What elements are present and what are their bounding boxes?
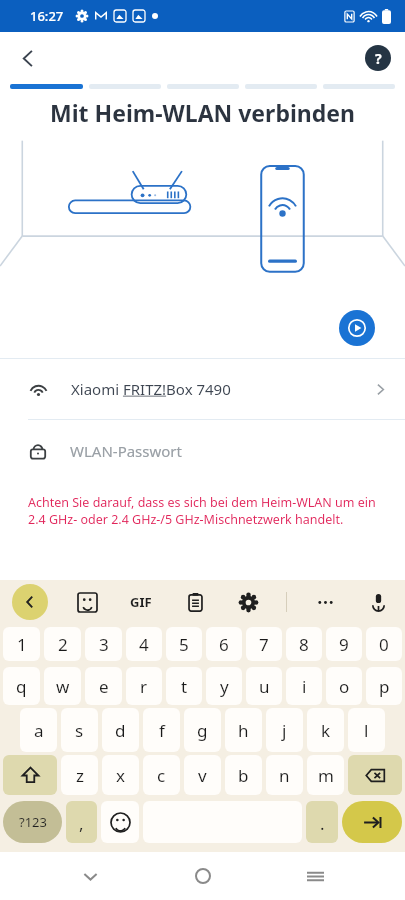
- button[interactable]: Home: [181, 854, 225, 898]
- staticText: q: [16, 675, 27, 698]
- button[interactable]: d: [102, 708, 139, 752]
- button[interactable]: 4: [126, 627, 162, 661]
- staticText: 9: [339, 633, 349, 656]
- button[interactable]: Back: [68, 854, 112, 898]
- button[interactable]: p: [366, 667, 402, 705]
- button[interactable]: ?123: [3, 801, 62, 843]
- staticText: GIF: [130, 593, 152, 611]
- button[interactable]: WLAN-Passwort: [0, 420, 405, 482]
- button[interactable]: l: [348, 708, 385, 752]
- button[interactable]: n: [266, 755, 303, 795]
- button[interactable]: v: [184, 755, 221, 795]
- button[interactable]: Shift: [3, 755, 57, 795]
- button[interactable]: Close toolbar: [12, 584, 48, 620]
- staticText: x: [116, 764, 125, 787]
- button[interactable]: w: [44, 667, 81, 705]
- button[interactable]: y: [206, 667, 242, 705]
- staticText: 2: [58, 633, 68, 656]
- staticText: 8: [299, 633, 309, 656]
- button[interactable]: u: [246, 667, 282, 705]
- button[interactable]: Play video: [339, 310, 375, 346]
- button[interactable]: a: [20, 708, 57, 752]
- button[interactable]: 8: [286, 627, 322, 661]
- staticText: 4: [139, 633, 149, 656]
- staticText: v: [198, 764, 207, 787]
- staticText: o: [339, 675, 350, 698]
- button[interactable]: 2: [44, 627, 81, 661]
- button[interactable]: Back: [6, 36, 50, 80]
- staticText: Mit Heim-WLAN verbinden: [16, 97, 389, 128]
- staticText: u: [259, 675, 270, 698]
- button[interactable]: GIF: [126, 589, 156, 615]
- staticText: ?: [375, 49, 382, 68]
- staticText: 6: [219, 633, 229, 656]
- staticText: a: [34, 719, 44, 742]
- button[interactable]: z: [61, 755, 98, 795]
- button[interactable]: Settings: [233, 587, 263, 617]
- button[interactable]: .: [306, 801, 338, 843]
- button[interactable]: o: [326, 667, 362, 705]
- staticText: p: [379, 675, 390, 698]
- staticText: b: [238, 764, 249, 787]
- button[interactable]: 9: [326, 627, 362, 661]
- button[interactable]: 0: [366, 627, 402, 661]
- staticText: s: [75, 719, 84, 742]
- staticText: f: [159, 719, 165, 742]
- staticText: 16:27: [30, 7, 64, 25]
- button[interactable]: 7: [246, 627, 282, 661]
- button[interactable]: Stickers: [72, 587, 102, 617]
- button[interactable]: 3: [85, 627, 122, 661]
- staticText: ?123: [19, 813, 47, 831]
- button[interactable]: r: [126, 667, 162, 705]
- staticText: 1: [17, 633, 27, 656]
- staticText: c: [157, 764, 166, 787]
- staticText: 0: [379, 633, 389, 656]
- button[interactable]: b: [225, 755, 262, 795]
- staticText: .: [320, 812, 325, 835]
- button[interactable]: 5: [166, 627, 202, 661]
- staticText: k: [321, 719, 331, 742]
- button[interactable]: s: [61, 708, 98, 752]
- staticText: e: [99, 675, 109, 698]
- button[interactable]: g: [184, 708, 221, 752]
- button[interactable]: c: [143, 755, 180, 795]
- staticText: y: [220, 675, 229, 698]
- button[interactable]: Clipboard: [180, 587, 210, 617]
- staticText: z: [76, 764, 84, 787]
- staticText: 7: [259, 633, 269, 656]
- button[interactable]: x: [102, 755, 139, 795]
- staticText: d: [115, 719, 126, 742]
- staticText: g: [197, 719, 208, 742]
- button[interactable]: q: [3, 667, 40, 705]
- button[interactable]: Help: [365, 45, 391, 71]
- button[interactable]: ,: [66, 801, 97, 843]
- button[interactable]: Xiaomi FRITZ!Box 7490: [0, 359, 405, 419]
- button[interactable]: j: [266, 708, 303, 752]
- button[interactable]: k: [307, 708, 344, 752]
- button[interactable]: 1: [3, 627, 40, 661]
- button[interactable]: 6: [206, 627, 242, 661]
- button[interactable]: e: [85, 667, 122, 705]
- button[interactable]: More options: [310, 587, 340, 617]
- staticText: m: [318, 764, 334, 787]
- button[interactable]: i: [286, 667, 322, 705]
- staticText: Achten Sie darauf, dass es sich bei dem …: [28, 494, 377, 528]
- button[interactable]: Emoji: [101, 801, 139, 843]
- button[interactable]: Voice input: [363, 587, 393, 617]
- button[interactable]: Next: [342, 801, 402, 843]
- staticText: 3: [99, 633, 109, 656]
- staticText: Xiaomi FRITZ!Box 7490: [71, 379, 231, 399]
- staticText: j: [282, 719, 287, 742]
- button[interactable]: f: [143, 708, 180, 752]
- button[interactable]: Backspace: [348, 755, 402, 795]
- staticText: WLAN-Passwort: [70, 441, 182, 461]
- button[interactable]: m: [307, 755, 344, 795]
- button[interactable]: Recents: [293, 854, 337, 898]
- button[interactable]: h: [225, 708, 262, 752]
- staticText: 5: [179, 633, 189, 656]
- button[interactable]: t: [166, 667, 202, 705]
- staticText: ,: [79, 812, 84, 835]
- staticText: n: [279, 764, 290, 787]
- staticText: i: [302, 675, 307, 698]
